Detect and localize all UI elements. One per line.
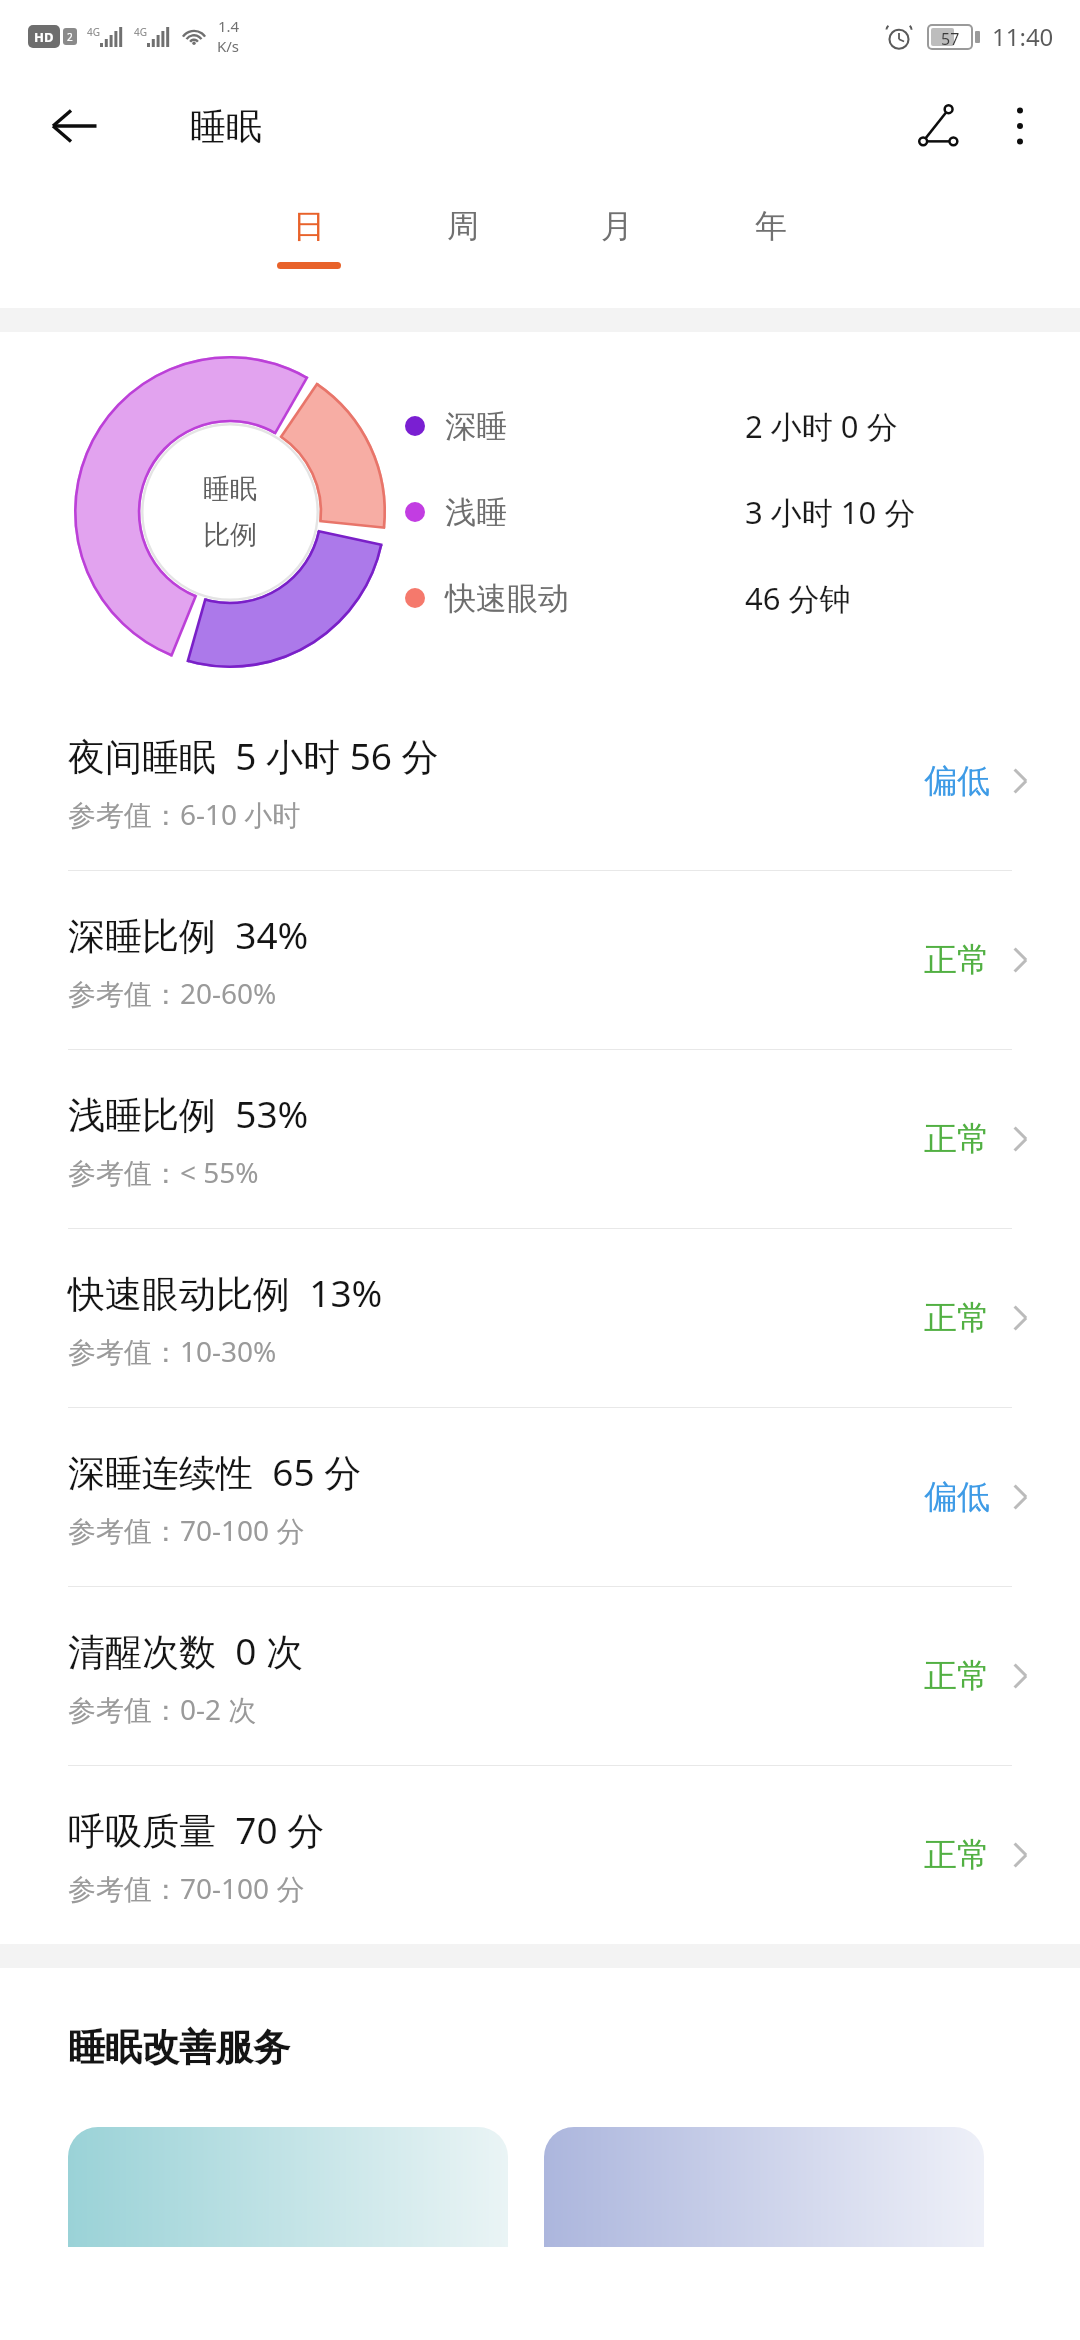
button[interactable]: 日 [232, 180, 386, 308]
staticText: 正常 [924, 1297, 990, 1339]
staticText: 浅睡比例 53% [68, 1088, 309, 1139]
staticText: 偏低 [924, 760, 990, 802]
staticText: 参考值：6-10 小时 [68, 795, 301, 833]
staticText: 正常 [924, 1118, 990, 1160]
button[interactable]: 快速眼动比例 13% [0, 1229, 1080, 1407]
staticText: 睡眠 [190, 104, 262, 149]
staticText: 正常 [924, 939, 990, 981]
button[interactable]: 呼吸质量 70 分 [0, 1766, 1080, 1944]
staticText: 2 [67, 30, 73, 44]
staticText: 呼吸质量 70 分 [68, 1804, 325, 1855]
staticText: 快速眼动比例 13% [68, 1267, 383, 1318]
staticText: 快速眼动 [445, 579, 569, 618]
button[interactable]: 深睡连续性 65 分 [0, 1408, 1080, 1586]
staticText: 参考值：10-30% [68, 1332, 277, 1370]
button[interactable]: Back [42, 94, 106, 158]
staticText: 年 [755, 206, 787, 246]
button[interactable]: Share [896, 83, 982, 169]
staticText: 深睡 [445, 407, 507, 446]
staticText: 偏低 [924, 1476, 990, 1518]
staticText: HD [34, 28, 54, 46]
staticText: 11:40 [992, 20, 1054, 53]
staticText: 2 小时 0 分 [745, 405, 898, 447]
staticText: 夜间睡眠 5 小时 56 分 [68, 730, 439, 781]
button[interactable]: 夜间睡眠 5 小时 56 分 [0, 692, 1080, 870]
button[interactable]: 清醒次数 0 次 [0, 1587, 1080, 1765]
staticText: 睡眠 [203, 472, 257, 506]
button[interactable] [544, 2127, 984, 2247]
staticText: 正常 [924, 1834, 990, 1876]
staticText: 参考值：0-2 次 [68, 1690, 257, 1728]
staticText: 浅睡 [445, 493, 507, 532]
staticText: 3 小时 10 分 [745, 491, 916, 533]
staticText: 日 [293, 206, 325, 246]
staticText: 1.4 [218, 16, 240, 36]
button[interactable]: 月 [540, 180, 694, 308]
staticText: 46 分钟 [745, 577, 851, 619]
staticText: K/s [217, 36, 240, 56]
staticText: 正常 [924, 1655, 990, 1697]
staticText: 参考值：20-60% [68, 974, 277, 1012]
staticText: 周 [447, 206, 479, 246]
button[interactable]: More options [982, 88, 1058, 164]
button[interactable]: 深睡比例 34% [0, 871, 1080, 1049]
staticText: 月 [601, 206, 633, 246]
staticText: 深睡连续性 65 分 [68, 1446, 362, 1497]
staticText: 深睡比例 34% [68, 909, 309, 960]
staticText: 4G [134, 25, 147, 39]
staticText: 4G [87, 25, 100, 39]
staticText: 清醒次数 0 次 [68, 1625, 304, 1676]
button[interactable]: 浅睡比例 53% [0, 1050, 1080, 1228]
staticText: 参考值：< 55% [68, 1153, 259, 1191]
button[interactable]: 年 [694, 180, 848, 308]
staticText: 参考值：70-100 分 [68, 1869, 305, 1907]
staticText: 57 [941, 28, 960, 46]
button[interactable] [68, 2127, 508, 2247]
staticText: 比例 [203, 518, 257, 552]
staticText: 睡眠改善服务 [68, 2024, 290, 2071]
button[interactable]: 周 [386, 180, 540, 308]
staticText: 参考值：70-100 分 [68, 1511, 305, 1549]
